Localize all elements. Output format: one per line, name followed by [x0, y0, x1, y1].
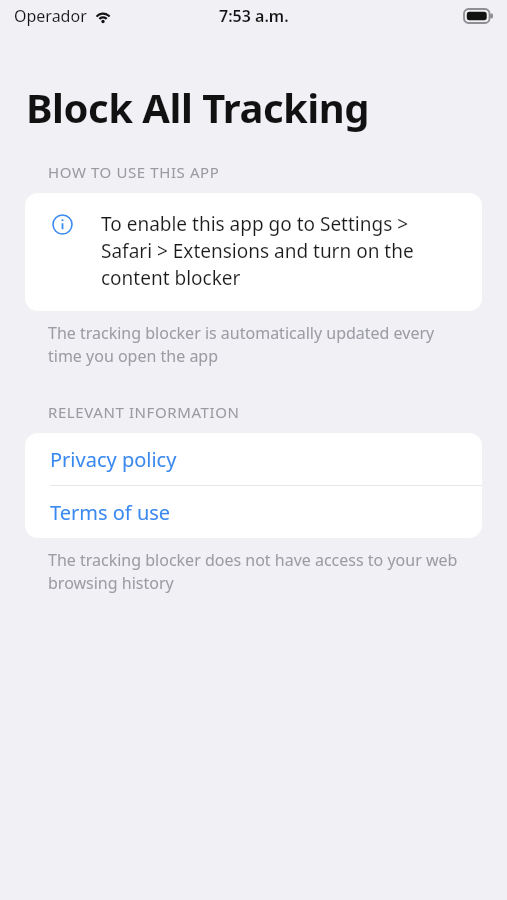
- staticText: Operador: [14, 5, 87, 27]
- staticText: Privacy policy: [50, 446, 177, 473]
- button[interactable]: Privacy policy: [25, 433, 482, 485]
- staticText: Terms of use: [50, 499, 171, 526]
- other: Information: [52, 214, 73, 235]
- staticText: Block All Tracking: [26, 80, 370, 134]
- staticText: RELEVANT INFORMATION: [48, 402, 240, 422]
- staticText: HOW TO USE THIS APP: [48, 162, 220, 182]
- staticText: 7:53 a.m.: [219, 5, 289, 27]
- staticText: The tracking blocker is automatically up…: [48, 322, 462, 367]
- button[interactable]: Information: [25, 193, 482, 311]
- staticText: To enable this app go to Settings > Safa…: [101, 211, 464, 291]
- button[interactable]: Terms of use: [25, 486, 482, 538]
- staticText: The tracking blocker does not have acces…: [48, 549, 462, 594]
